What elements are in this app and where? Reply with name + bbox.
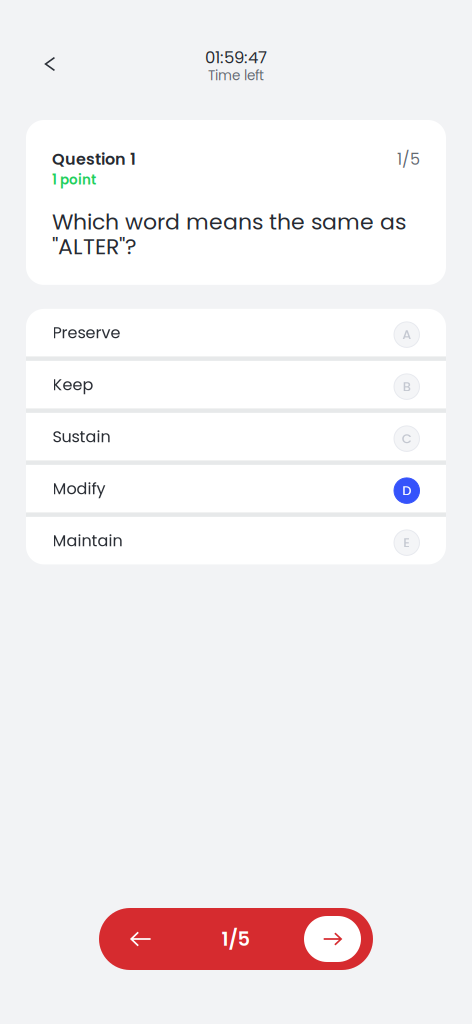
button[interactable]: Preserve <box>26 309 446 356</box>
button[interactable]: Previous question <box>113 908 169 970</box>
staticText: C <box>402 429 412 448</box>
staticText: Sustain <box>52 425 110 448</box>
staticText: Time left <box>208 66 264 85</box>
staticText: Preserve <box>52 321 120 344</box>
staticText: E <box>403 533 410 552</box>
staticText: B <box>403 377 411 396</box>
staticText: A <box>402 325 411 344</box>
button[interactable]: Sustain <box>26 413 446 460</box>
staticText: D <box>402 481 411 500</box>
staticText: Modify <box>52 477 105 500</box>
staticText: Question 1 <box>52 148 136 170</box>
button[interactable]: Modify <box>26 465 446 512</box>
staticText: 01:59:47 <box>205 46 267 69</box>
staticText: 1 point <box>52 170 96 189</box>
button[interactable]: Next question <box>304 916 361 962</box>
button[interactable]: Maintain <box>26 517 446 564</box>
button[interactable]: Back <box>28 42 72 86</box>
staticText: 1/5 <box>221 925 250 953</box>
staticText: Keep <box>52 373 93 396</box>
button[interactable]: Keep <box>26 361 446 408</box>
staticText: Which word means the same as "ALTER"? <box>52 206 406 262</box>
staticText: 1/5 <box>397 148 420 170</box>
staticText: Maintain <box>52 529 122 552</box>
